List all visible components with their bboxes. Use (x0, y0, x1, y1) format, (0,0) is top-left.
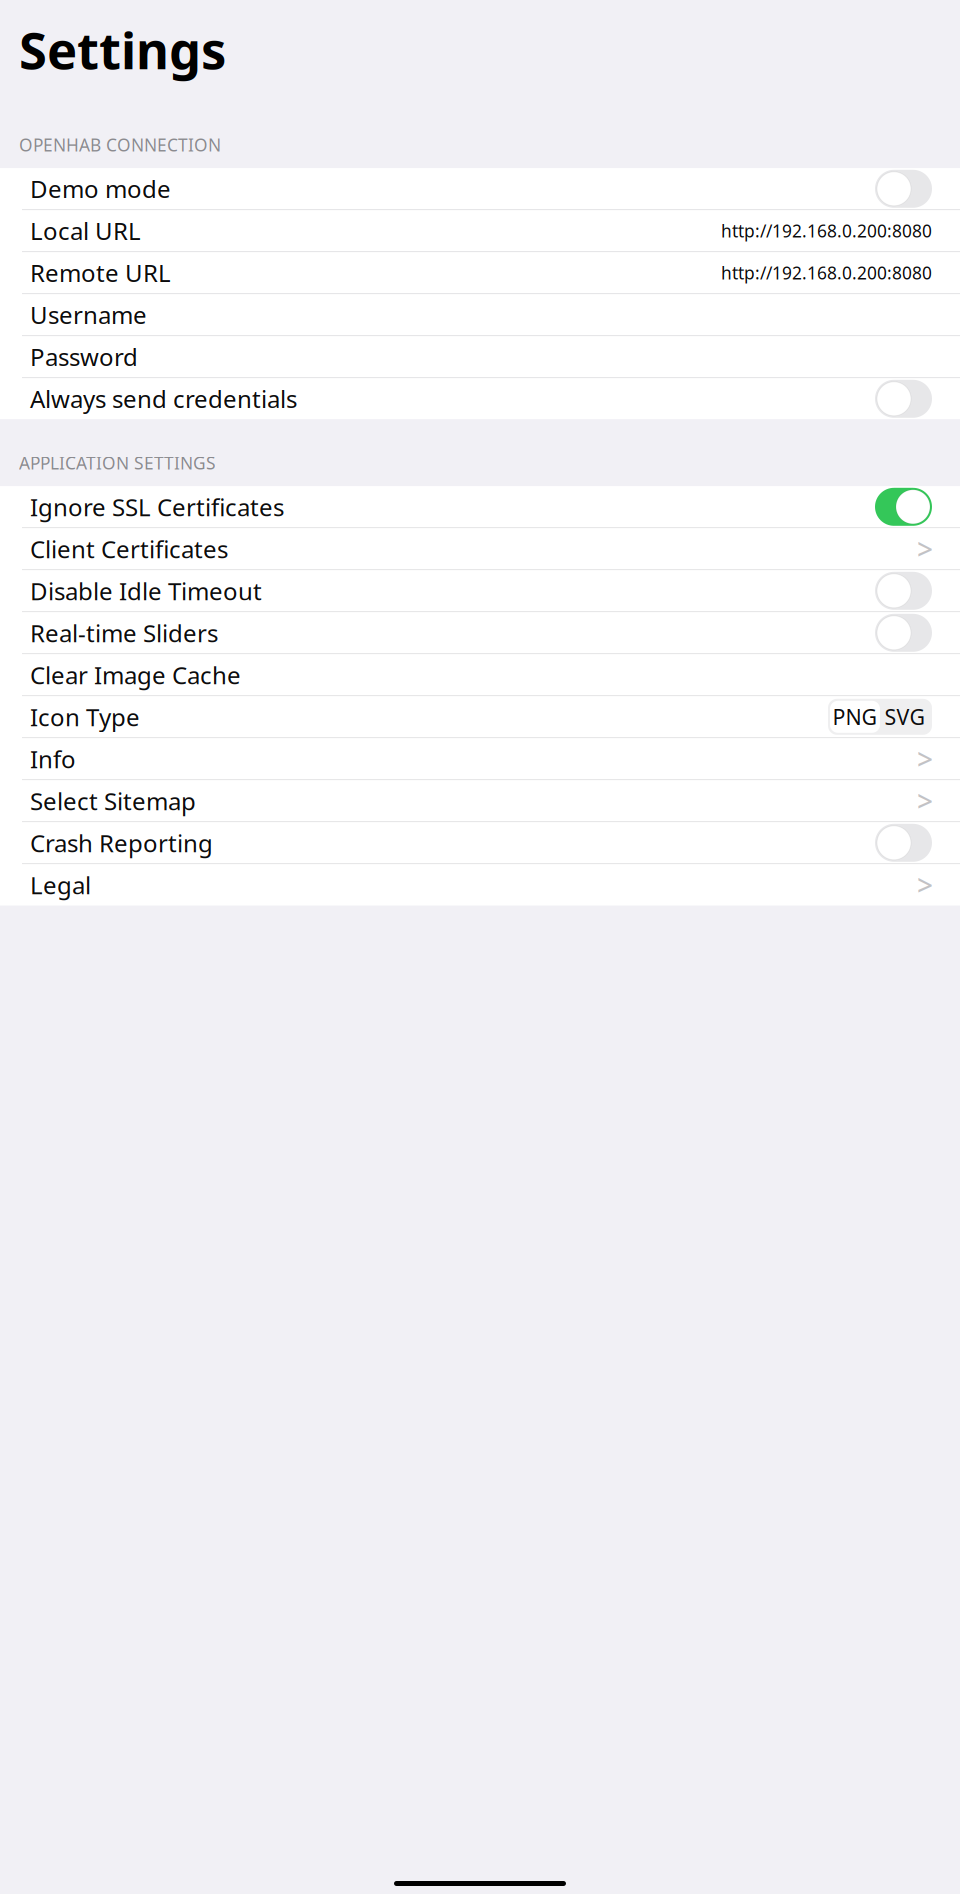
button[interactable]: Client Certificates (0, 528, 960, 569)
button[interactable]: Select Sitemap (0, 780, 960, 821)
button[interactable]: Clear Image Cache (0, 654, 960, 695)
staticText: > (917, 740, 933, 777)
staticText: Select Sitemap (30, 785, 196, 817)
button[interactable]: Real-time Sliders (0, 612, 960, 653)
staticText: Client Certificates (30, 533, 228, 565)
button[interactable]: Password (0, 336, 960, 377)
staticText: Disable Idle Timeout (30, 575, 262, 607)
button[interactable]: PNG (830, 701, 880, 733)
staticText: APPLICATION SETTINGS (19, 451, 216, 474)
button[interactable]: Local URL (0, 210, 960, 251)
button[interactable]: Disable Idle Timeout (0, 570, 960, 611)
staticText: Icon Type (30, 701, 140, 733)
staticText: Settings (19, 16, 226, 83)
staticText: Remote URL (30, 257, 171, 289)
button[interactable]: Remote URL (0, 252, 960, 293)
staticText: http://192.168.0.200:8080 (721, 261, 932, 284)
button[interactable]: Info (0, 738, 960, 779)
staticText: PNG (832, 703, 877, 731)
button[interactable]: Always send credentials (0, 378, 960, 419)
staticText: OPENHAB CONNECTION (19, 133, 221, 156)
button[interactable]: SVG (880, 701, 930, 733)
staticText: Ignore SSL Certificates (30, 491, 284, 523)
staticText: > (917, 782, 933, 819)
staticText: > (917, 530, 933, 567)
staticText: http://192.168.0.200:8080 (721, 219, 932, 242)
button[interactable]: Username (0, 294, 960, 335)
staticText: Real-time Sliders (30, 617, 218, 649)
staticText: Username (30, 299, 147, 331)
button[interactable]: Ignore SSL Certificates (0, 486, 960, 527)
button[interactable]: Demo mode (0, 168, 960, 209)
staticText: Always send credentials (30, 383, 297, 415)
button[interactable]: Legal (0, 864, 960, 905)
staticText: Local URL (30, 215, 141, 247)
staticText: Crash Reporting (30, 827, 213, 859)
staticText: Clear Image Cache (30, 659, 241, 691)
staticText: Legal (30, 869, 91, 901)
button[interactable]: Crash Reporting (0, 822, 960, 863)
staticText: Demo mode (30, 173, 171, 205)
staticText: Password (30, 341, 138, 373)
button[interactable]: Icon Type (0, 696, 960, 737)
staticText: SVG (884, 703, 925, 731)
staticText: > (917, 866, 933, 903)
staticText: Info (30, 743, 76, 775)
